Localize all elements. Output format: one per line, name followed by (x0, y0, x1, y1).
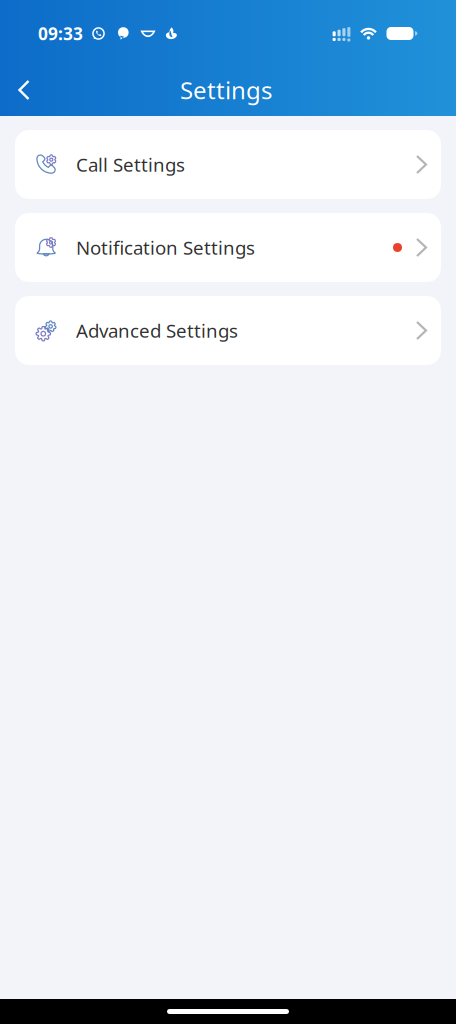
staticText: Call Settings (76, 152, 185, 177)
staticText: Settings (180, 74, 272, 106)
button[interactable]: Notification Settings (15, 213, 441, 282)
button[interactable]: Call Settings (15, 130, 441, 199)
staticText: Notification Settings (76, 235, 255, 260)
button[interactable]: Advanced Settings (15, 296, 441, 365)
staticText: 09:33 (38, 22, 83, 45)
button[interactable]: Back (0, 68, 46, 112)
staticText: Advanced Settings (76, 318, 238, 343)
